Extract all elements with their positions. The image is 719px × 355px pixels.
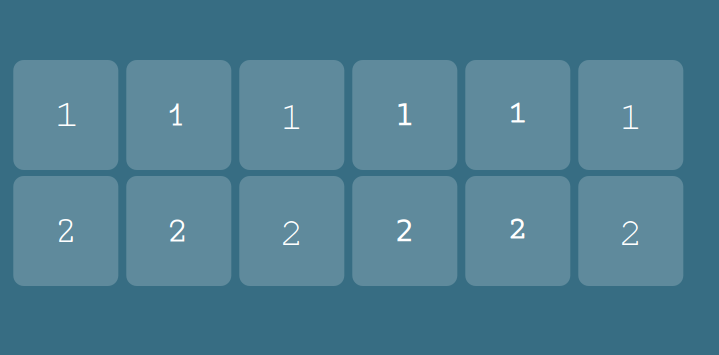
staticText: 2 (54, 209, 78, 253)
staticText: 2 (280, 207, 304, 255)
staticText: 1 (280, 91, 304, 139)
staticText: 2 (619, 207, 643, 255)
staticText: 1 (170, 98, 188, 132)
staticText: 2 (507, 211, 528, 250)
staticText: 1 (619, 91, 643, 139)
staticText: 1 (395, 98, 414, 132)
staticText: 1 (507, 95, 528, 134)
staticText: 2 (170, 214, 188, 248)
staticText: 1 (54, 93, 78, 137)
staticText: 2 (395, 214, 414, 248)
